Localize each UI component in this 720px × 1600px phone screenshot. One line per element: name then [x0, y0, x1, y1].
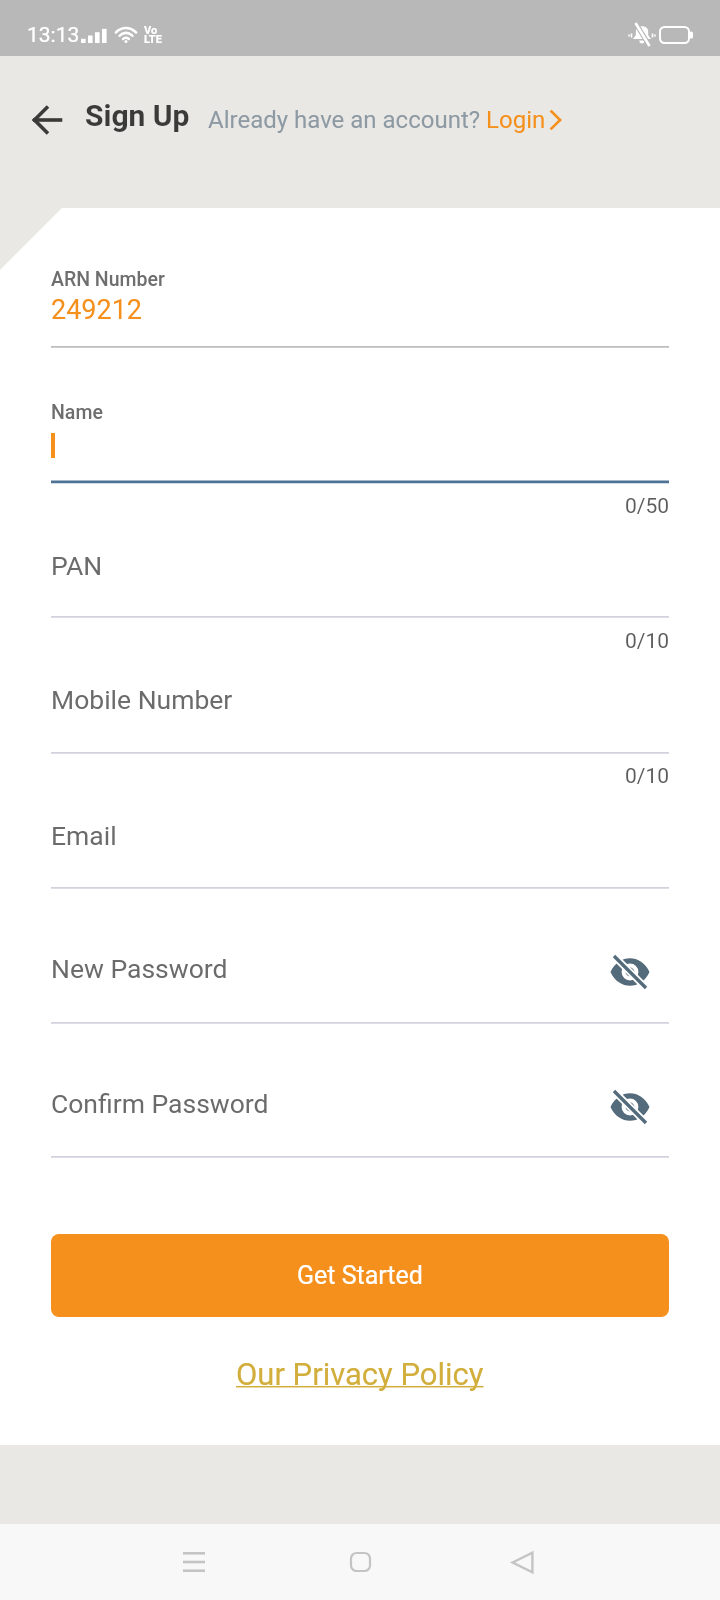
button[interactable]: [41, 255, 679, 347]
staticText: 13:13: [27, 23, 80, 48]
button[interactable]: [41, 810, 679, 889]
button[interactable]: Get Started: [51, 1234, 669, 1317]
button[interactable]: Back: [14, 94, 80, 146]
staticText: PAN: [51, 550, 103, 581]
staticText: Email: [51, 820, 117, 851]
staticText: 249212: [51, 294, 143, 326]
button[interactable]: [41, 1078, 600, 1158]
button[interactable]: [41, 390, 679, 483]
staticText: New Password: [51, 953, 228, 984]
button[interactable]: Recents: [158, 1530, 230, 1594]
staticText: 0/10: [625, 629, 670, 654]
staticText: ARN Number: [51, 268, 165, 291]
staticText: Name: [51, 401, 103, 424]
staticText: 0/10: [625, 764, 670, 789]
button[interactable]: Home: [324, 1530, 396, 1594]
button[interactable]: Already have an account? Login: [208, 106, 565, 134]
staticText: Confirm Password: [51, 1088, 269, 1119]
button[interactable]: [41, 540, 679, 618]
staticText: Vo: [144, 24, 158, 37]
staticText: Get Started: [297, 1261, 423, 1290]
staticText: Already have an account? Login: [208, 106, 546, 134]
staticText: Sign Up: [85, 98, 190, 133]
button[interactable]: [41, 674, 679, 754]
button[interactable]: [41, 943, 600, 1024]
button[interactable]: Show password: [604, 1083, 656, 1131]
button[interactable]: Our Privacy Policy: [236, 1356, 484, 1392]
button[interactable]: Show password: [604, 948, 656, 996]
button[interactable]: Back: [486, 1530, 558, 1594]
staticText: LTE: [144, 33, 162, 46]
staticText: 0/50: [625, 494, 670, 519]
staticText: Mobile Number: [51, 684, 233, 715]
